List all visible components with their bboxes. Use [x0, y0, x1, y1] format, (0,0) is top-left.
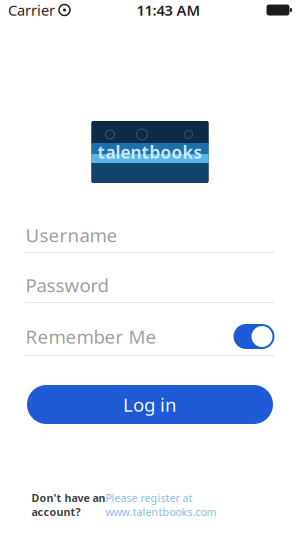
staticText: Please register at www.talentbooks.com: [105, 491, 216, 519]
staticText: Log in: [123, 392, 177, 417]
staticText: Don't have an account?: [31, 491, 105, 519]
staticText: Password: [25, 273, 108, 297]
staticText: talentbooks: [97, 140, 202, 163]
staticText: Carrier: [8, 0, 55, 20]
button[interactable]: Password: [25, 275, 274, 303]
staticText: 11:43 AM: [136, 0, 200, 20]
button[interactable]: Don't have an account?: [31, 491, 268, 519]
staticText: Username: [25, 223, 117, 247]
staticText: Remember Me: [25, 324, 156, 349]
button[interactable]: Remember Me: [25, 324, 274, 356]
button[interactable]: Log in: [27, 385, 273, 424]
button[interactable]: Username: [25, 225, 274, 253]
